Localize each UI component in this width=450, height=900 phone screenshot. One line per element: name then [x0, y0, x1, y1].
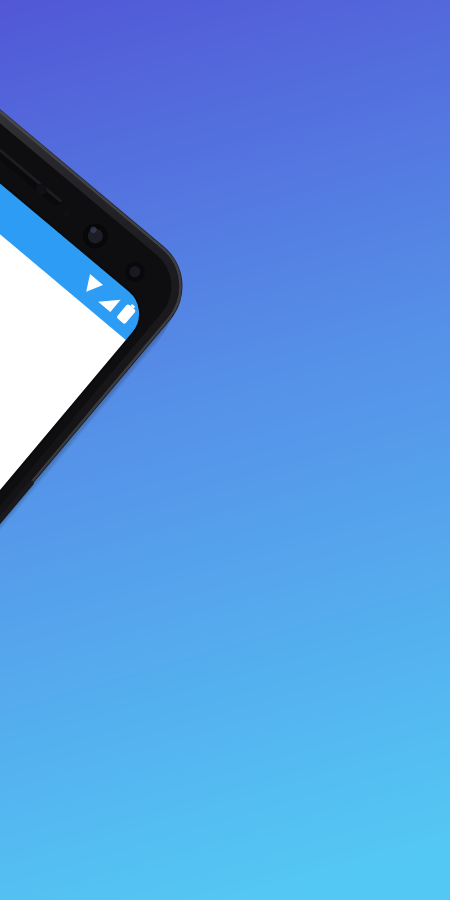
button[interactable]: App promo artwork [0, 0, 450, 900]
